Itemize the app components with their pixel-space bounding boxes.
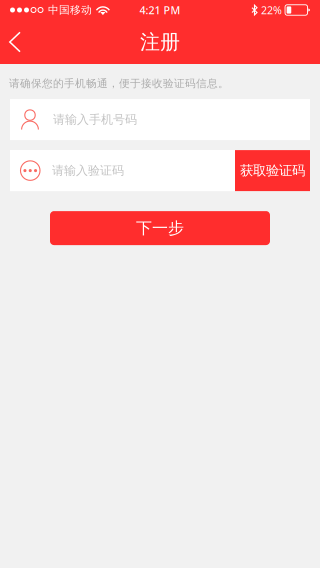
button[interactable]: Back bbox=[0, 20, 36, 64]
button[interactable]: 获取验证码 bbox=[235, 150, 310, 191]
staticText: 请输入验证码 bbox=[52, 163, 124, 178]
staticText: 请输入手机号码 bbox=[53, 112, 137, 127]
staticText: 下一步 bbox=[136, 218, 184, 238]
staticText: 注册 bbox=[140, 30, 180, 54]
button[interactable]: 下一步 bbox=[50, 211, 270, 245]
button[interactable]: 请输入手机号码 bbox=[10, 99, 310, 140]
button[interactable]: 请输入验证码 bbox=[10, 150, 235, 191]
staticText: 22% bbox=[261, 3, 282, 17]
staticText: 请确保您的手机畅通，便于接收验证码信息。 bbox=[9, 77, 229, 90]
staticText: 4:21 PM bbox=[139, 3, 180, 17]
staticText: 中国移动 bbox=[48, 3, 92, 16]
staticText: 获取验证码 bbox=[240, 162, 305, 179]
